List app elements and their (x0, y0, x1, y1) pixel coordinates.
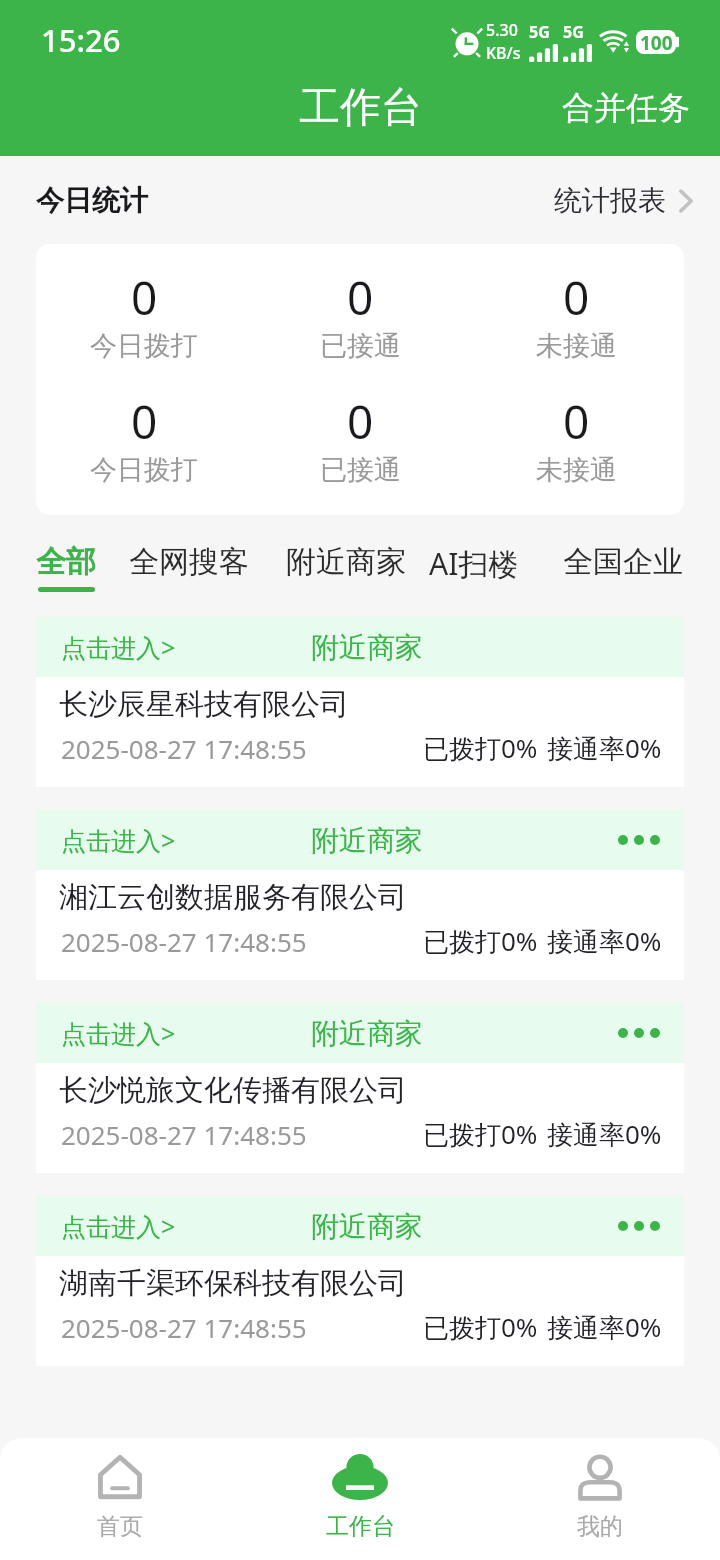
staticText: 点击进入> (61, 630, 176, 664)
staticText: 附近商家 (311, 630, 423, 665)
staticText: 长沙悦旅文化传播有限公司 (59, 1072, 407, 1109)
staticText: 附近商家 (311, 1209, 423, 1244)
staticText: 2025-08-27 17:48:55 (61, 924, 307, 959)
button[interactable]: More options (618, 1028, 684, 1038)
staticText: 已接通 (320, 329, 401, 363)
staticText: 0 (347, 390, 374, 453)
staticText: 我的 (577, 1512, 623, 1541)
staticText: 2025-08-27 17:48:55 (61, 731, 307, 766)
staticText: 15:26 (41, 19, 121, 61)
staticText: 已拨打0% (423, 730, 538, 766)
staticText: 工作台 (326, 1512, 395, 1541)
staticText: 点击进入> (61, 1209, 176, 1243)
staticText: 全网搜客 (129, 543, 249, 581)
staticText: 今日拨打 (90, 329, 198, 363)
staticText: 附近商家 (311, 823, 423, 858)
staticText: 已拨打0% (423, 923, 538, 959)
button[interactable]: 点击进入> (36, 810, 684, 980)
staticText: AI扫楼 (429, 543, 519, 584)
button[interactable]: 点击进入> (36, 617, 684, 787)
button[interactable]: 点击进入> (36, 1196, 684, 1366)
button[interactable]: 工作台 (240, 1438, 480, 1560)
staticText: 附近商家 (311, 1016, 423, 1051)
staticText: 点击进入> (61, 823, 176, 857)
button[interactable]: More options (618, 835, 684, 845)
staticText: 接通率0% (547, 1309, 662, 1345)
button[interactable]: AI扫楼 (429, 515, 519, 595)
staticText: 合并任务 (562, 88, 690, 128)
button[interactable]: More options (618, 1221, 684, 1231)
button[interactable]: 我的 (480, 1438, 720, 1560)
staticText: 5G (563, 21, 584, 43)
staticText: 0 (131, 266, 158, 329)
button[interactable]: 点击进入> (36, 1003, 684, 1173)
staticText: 全部 (36, 543, 96, 581)
staticText: 100 (640, 30, 673, 54)
staticText: 点击进入> (61, 1016, 176, 1050)
button[interactable]: 全国企业 (563, 515, 683, 592)
staticText: KB/s (486, 42, 521, 64)
staticText: 已接通 (320, 453, 401, 487)
staticText: 5G (529, 21, 550, 43)
staticText: 统计报表 (554, 183, 666, 218)
staticText: 0 (131, 390, 158, 453)
staticText: 2025-08-27 17:48:55 (61, 1310, 307, 1345)
staticText: 未接通 (536, 453, 617, 487)
staticText: 接通率0% (547, 1116, 662, 1152)
staticText: 湘江云创数据服务有限公司 (59, 879, 407, 916)
staticText: 首页 (97, 1512, 143, 1541)
staticText: 今日拨打 (90, 453, 198, 487)
staticText: 接通率0% (547, 730, 662, 766)
staticText: 工作台 (299, 82, 422, 134)
button[interactable]: 合并任务 (562, 96, 720, 136)
staticText: 已拨打0% (423, 1116, 538, 1152)
staticText: 长沙辰星科技有限公司 (59, 686, 349, 723)
staticText: 5.30 (486, 19, 518, 41)
staticText: 0 (563, 266, 590, 329)
staticText: 湖南千渠环保科技有限公司 (59, 1265, 407, 1302)
staticText: 已拨打0% (423, 1309, 538, 1345)
button[interactable]: 首页 (0, 1438, 240, 1560)
staticText: 全国企业 (563, 543, 683, 581)
staticText: 2025-08-27 17:48:55 (61, 1117, 307, 1152)
button[interactable]: 全部 (36, 515, 96, 592)
staticText: 今日统计 (36, 183, 148, 218)
button[interactable]: 附近商家 (286, 515, 406, 592)
staticText: 未接通 (536, 329, 617, 363)
staticText: 0 (347, 266, 374, 329)
button[interactable]: 统计报表 (554, 183, 694, 218)
staticText: 0 (563, 390, 590, 453)
button[interactable]: 全网搜客 (129, 515, 249, 592)
staticText: 接通率0% (547, 923, 662, 959)
staticText: 附近商家 (286, 543, 406, 581)
